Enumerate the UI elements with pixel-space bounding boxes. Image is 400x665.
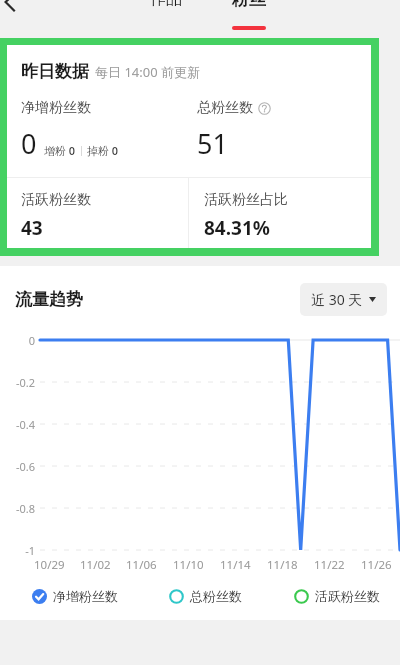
button[interactable]: 作品 (150, 0, 200, 26)
staticText: 流量趋势 (15, 289, 83, 310)
staticText: 近 30 天 (311, 290, 363, 309)
staticText: 84.31% (204, 215, 270, 241)
button[interactable]: 总粉丝数 (169, 584, 242, 608)
staticText: 0 (21, 125, 37, 162)
staticText: -0.6 (0, 459, 35, 474)
button[interactable]: 昨日数据 (7, 45, 371, 248)
staticText: 11/14 (220, 557, 251, 573)
staticText: -0.2 (0, 375, 35, 390)
staticText: 0 (0, 333, 35, 348)
staticText: 51 (197, 125, 228, 162)
staticText: 活跃粉丝数 (315, 588, 380, 604)
staticText: 每日 14:00 前更新 (95, 63, 200, 81)
staticText: -1 (0, 543, 35, 558)
staticText: 11/18 (267, 557, 298, 573)
staticText: -0.4 (0, 417, 35, 432)
staticText: 11/02 (80, 557, 111, 573)
staticText: 11/06 (126, 557, 157, 573)
staticText: 作品 (150, 0, 182, 9)
button[interactable]: 净增粉丝数 (32, 584, 118, 608)
staticText: 活跃粉丝数 (21, 191, 91, 209)
staticText: 11/10 (173, 557, 204, 573)
staticText: 掉粉 0 (87, 143, 119, 158)
button[interactable]: 近 30 天 (300, 283, 387, 316)
button[interactable]: 粉丝 (220, 0, 278, 30)
staticText: 粉丝 (232, 0, 266, 10)
staticText: 活跃粉丝占比 (204, 191, 288, 209)
staticText: 总粉丝数 (190, 588, 242, 604)
staticText: -0.8 (0, 501, 35, 516)
staticText: 11/22 (314, 557, 345, 573)
button[interactable]: 总粉丝数说明 (258, 102, 271, 115)
staticText: 43 (21, 215, 43, 241)
staticText: 净增粉丝数 (21, 99, 91, 117)
staticText: 11/26 (361, 557, 392, 573)
staticText: 总粉丝数 (197, 99, 253, 117)
staticText: 净增粉丝数 (53, 588, 118, 604)
staticText: 10/29 (34, 557, 65, 573)
button[interactable]: 活跃粉丝数 (294, 584, 380, 608)
staticText: 昨日数据 (21, 61, 89, 82)
button[interactable]: Back (0, 0, 20, 20)
staticText: 增粉 0 (44, 143, 76, 158)
